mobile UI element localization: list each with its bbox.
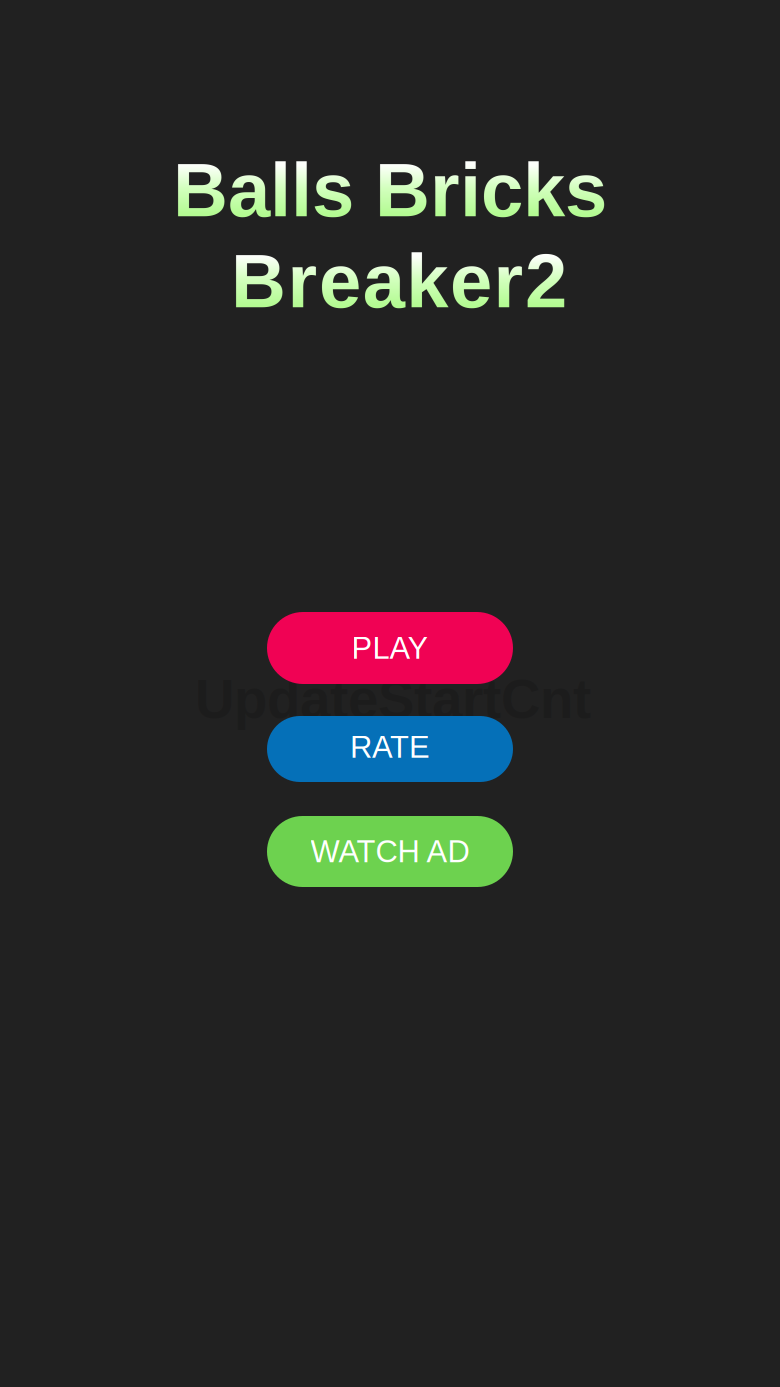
button[interactable]: WATCH AD xyxy=(267,816,513,887)
staticText: UpdateStartCnt xyxy=(195,668,591,730)
button[interactable]: RATE xyxy=(267,716,513,782)
staticText: PLAY xyxy=(351,631,428,665)
staticText: RATE xyxy=(350,730,430,764)
staticText: WATCH AD xyxy=(310,834,469,869)
button[interactable]: PLAY xyxy=(267,612,513,684)
